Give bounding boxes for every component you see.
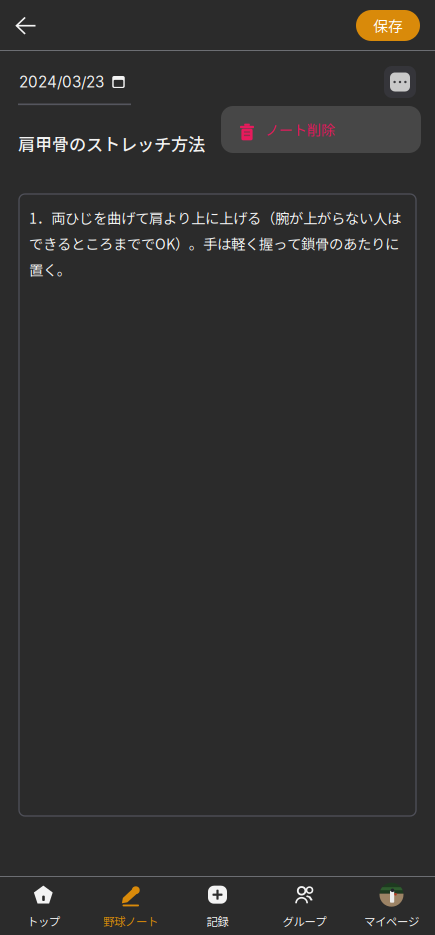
button[interactable]: More options (379, 61, 421, 103)
staticText: 記録 (206, 913, 228, 929)
staticText: トップ (27, 913, 60, 929)
button[interactable]: マイページ (348, 877, 435, 935)
staticText: 野球ノート (103, 913, 158, 929)
staticText: 1．両ひじを曲げて肩より上に上げる（腕が上がらない人はできるところまででOK）。… (29, 207, 401, 280)
button[interactable]: グループ (261, 877, 348, 935)
staticText: 保存 (373, 15, 403, 36)
staticText: マイページ (364, 913, 419, 929)
staticText: ノート削除 (265, 119, 335, 140)
button[interactable]: トップ (0, 877, 87, 935)
button[interactable]: 記録 (174, 877, 261, 935)
button[interactable]: 保存 (356, 10, 420, 41)
button[interactable]: 野球ノート (87, 877, 174, 935)
staticText: グループ (282, 913, 326, 929)
staticText: 2024/03/23 (19, 73, 104, 91)
button[interactable]: ノート削除 (221, 106, 421, 153)
button[interactable]: Back (4, 4, 48, 48)
staticText: 肩甲骨のストレッチ方法 (18, 131, 205, 156)
